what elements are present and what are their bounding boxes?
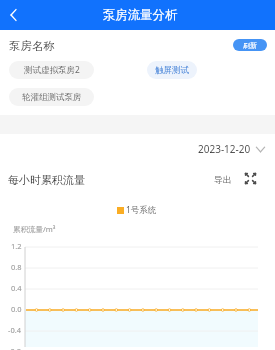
staticText: 刷新 [243,41,257,50]
staticText: 导出 [214,174,232,185]
staticText: 1.2 [11,241,22,251]
staticText: 泵房名称 [9,39,55,53]
staticText: -0.8 [8,346,22,350]
button[interactable]: 轮灌组测试泵房 [9,88,94,106]
staticText: -0.4 [8,325,22,335]
button[interactable]: Fullscreen [244,172,257,185]
staticText: 触屏测试 [155,65,189,76]
staticText: 泵房流量分析 [103,7,178,23]
button[interactable]: Back [0,0,26,30]
staticText: 1号系统 [126,204,157,216]
button[interactable]: 刷新 [233,39,267,51]
staticText: 0.8 [11,262,22,272]
staticText: 累积流量/m³ [13,224,56,234]
staticText: 每小时累积流量 [8,173,85,187]
staticText: 轮灌组测试泵房 [22,92,82,103]
button[interactable]: 2023-12-20 [190,138,275,160]
button[interactable]: 触屏测试 [147,61,197,79]
staticText: 0.4 [11,283,22,293]
button[interactable]: 测试虚拟泵房2 [9,61,94,79]
staticText: 测试虚拟泵房2 [24,64,80,76]
staticText: 2023-12-20 [198,142,251,156]
button[interactable]: 导出 [212,172,234,187]
staticText: 0.0 [11,304,22,314]
